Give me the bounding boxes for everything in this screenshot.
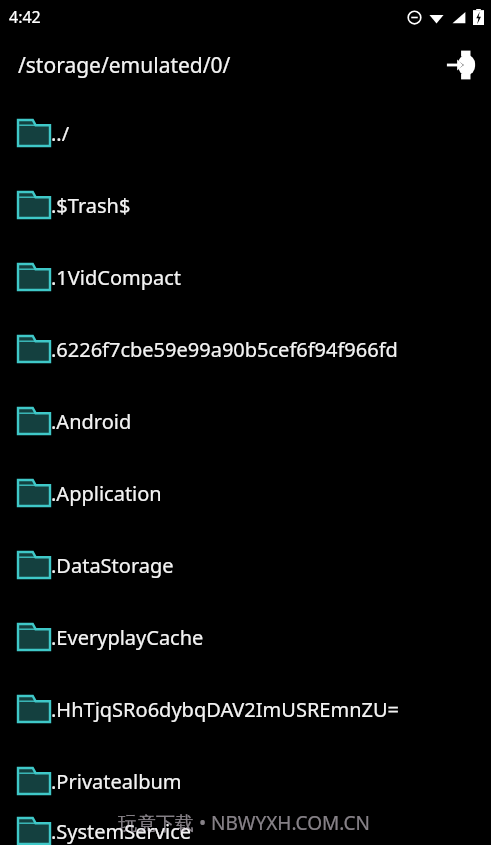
staticText: .EveryplayCache <box>51 624 204 651</box>
button[interactable]: .6226f7cbe59e99a90b5cef6f94f966fd <box>0 313 491 385</box>
staticText: .6226f7cbe59e99a90b5cef6f94f966fd <box>51 336 398 363</box>
button[interactable]: .SystemService <box>0 817 491 845</box>
button[interactable]: ../ <box>0 97 491 169</box>
staticText: .Privatealbum <box>51 768 182 795</box>
button[interactable]: .Application <box>0 457 491 529</box>
staticText: .Android <box>51 408 132 435</box>
staticText: .1VidCompact <box>51 264 182 291</box>
staticText: .Application <box>51 480 162 507</box>
button[interactable]: .DataStorage <box>0 529 491 601</box>
staticText: .SystemService <box>51 818 192 845</box>
staticText: 4:42 <box>9 6 41 28</box>
button[interactable]: Send to watch <box>444 48 478 82</box>
button[interactable]: .1VidCompact <box>0 241 491 313</box>
staticText: /storage/emulated/0/ <box>18 51 231 80</box>
staticText: ../ <box>51 120 70 147</box>
staticText: .DataStorage <box>51 552 174 579</box>
button[interactable]: .$Trash$ <box>0 169 491 241</box>
button[interactable]: .HhTjqSRo6dybqDAV2ImUSREmnZU= <box>0 673 491 745</box>
button[interactable]: .EveryplayCache <box>0 601 491 673</box>
staticText: .$Trash$ <box>51 192 131 219</box>
button[interactable]: .Android <box>0 385 491 457</box>
button[interactable]: .Privatealbum <box>0 745 491 817</box>
staticText: .HhTjqSRo6dybqDAV2ImUSREmnZU= <box>51 696 399 723</box>
staticText: 玩竟下载 • NBWYXH.COM.CN <box>118 810 370 836</box>
